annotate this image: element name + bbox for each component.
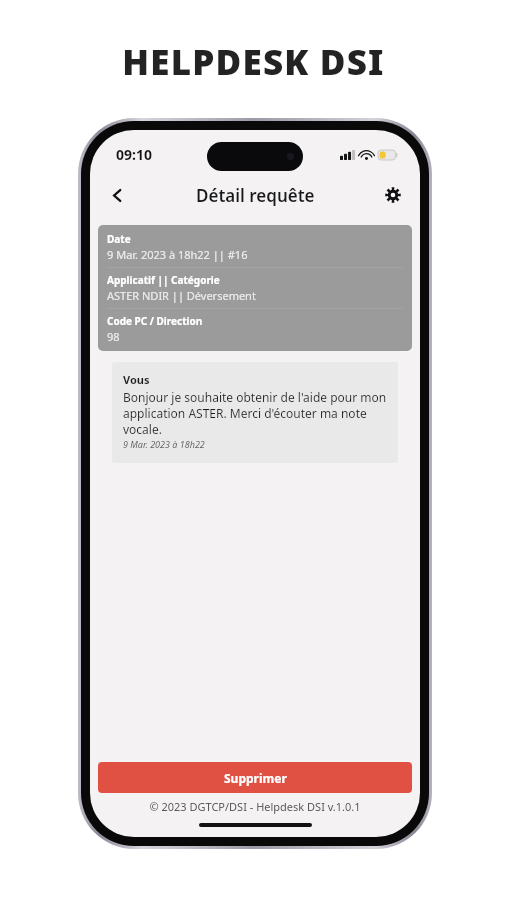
staticText: 9 Mar. 2023 à 18h22 || #16 — [107, 247, 248, 262]
staticText: ASTER NDIR || Déversement — [107, 288, 256, 303]
button[interactable]: Vous — [112, 362, 398, 463]
staticText: 9 Mar. 2023 à 18h22 — [123, 438, 205, 450]
staticText: Code PC / Direction — [107, 314, 203, 328]
staticText: HELPDESK DSI — [122, 38, 385, 86]
staticText: Supprimer — [224, 770, 287, 786]
staticText: 09:10 — [116, 145, 152, 164]
staticText: Date — [107, 232, 131, 246]
staticText: Bonjour je souhaite obtenir de l'aide po… — [123, 389, 387, 437]
button[interactable]: Supprimer — [98, 762, 412, 793]
staticText: Détail requête — [196, 184, 315, 207]
button[interactable]: Date — [98, 225, 412, 351]
button[interactable]: Paramètres — [374, 176, 412, 214]
button[interactable]: Retour — [98, 176, 136, 214]
staticText: © 2023 DGTCP/DSI - Helpdesk DSI v.1.0.1 — [149, 799, 361, 814]
staticText: 98 — [107, 329, 120, 344]
staticText: Vous — [123, 372, 150, 387]
staticText: Applicatif || Catégorie — [107, 273, 220, 287]
